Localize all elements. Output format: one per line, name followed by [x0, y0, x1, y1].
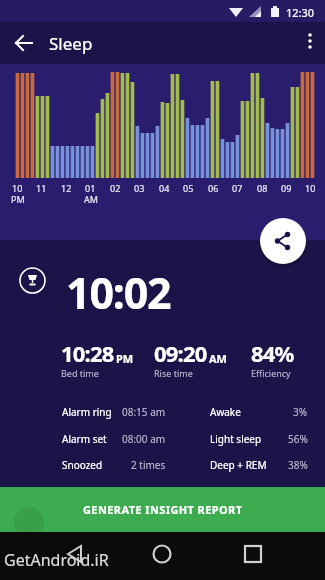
button[interactable]	[8, 27, 40, 59]
staticText: Sleep	[49, 32, 93, 55]
staticText: 11	[36, 182, 47, 194]
staticText: 2 times	[131, 458, 166, 472]
staticText: 03	[134, 182, 145, 194]
button[interactable]	[233, 534, 273, 574]
button[interactable]	[142, 534, 182, 574]
staticText: AM	[209, 351, 227, 366]
staticText: 10:28	[61, 338, 114, 368]
staticText: 56%	[288, 432, 308, 446]
staticText: Awake	[210, 405, 241, 419]
staticText: PM	[11, 193, 25, 205]
staticText: GENERATE INSIGHT REPORT	[83, 502, 243, 517]
staticText: 10	[305, 182, 316, 194]
staticText: 04	[159, 182, 170, 194]
staticText: 07	[232, 182, 243, 194]
button[interactable]	[296, 27, 324, 55]
staticText: GetAndroid.iR	[4, 549, 109, 571]
staticText: 08:00 am	[122, 432, 166, 446]
staticText: 84%	[251, 338, 294, 368]
staticText: Bed time	[61, 367, 99, 379]
staticText: 02	[110, 182, 121, 194]
staticText: 3%	[293, 405, 308, 419]
button[interactable]: GENERATE INSIGHT REPORT	[0, 487, 325, 532]
staticText: 06	[208, 182, 219, 194]
staticText: Alarm set	[62, 432, 107, 446]
staticText: Alarm ring	[62, 405, 112, 419]
staticText: 08:15 am	[122, 405, 166, 419]
staticText: 09	[281, 182, 292, 194]
button[interactable]	[260, 218, 306, 264]
staticText: 38%	[288, 458, 308, 472]
staticText: 01	[85, 182, 96, 194]
staticText: PM	[116, 351, 134, 366]
staticText: 08	[257, 182, 268, 194]
staticText: 12	[61, 182, 72, 194]
staticText: Snoozed	[62, 458, 103, 472]
button[interactable]	[55, 534, 95, 574]
staticText: 09:20	[154, 338, 207, 368]
staticText: Efficiency	[251, 367, 291, 379]
staticText: 12:30	[286, 5, 315, 20]
staticText: AM	[84, 193, 98, 205]
staticText: 05	[183, 182, 194, 194]
staticText: Light sleep	[210, 432, 262, 446]
staticText: 10	[12, 182, 23, 194]
staticText: Deep + REM	[210, 458, 267, 472]
staticText: Rise time	[154, 367, 193, 379]
staticText: 10:02	[66, 263, 171, 322]
